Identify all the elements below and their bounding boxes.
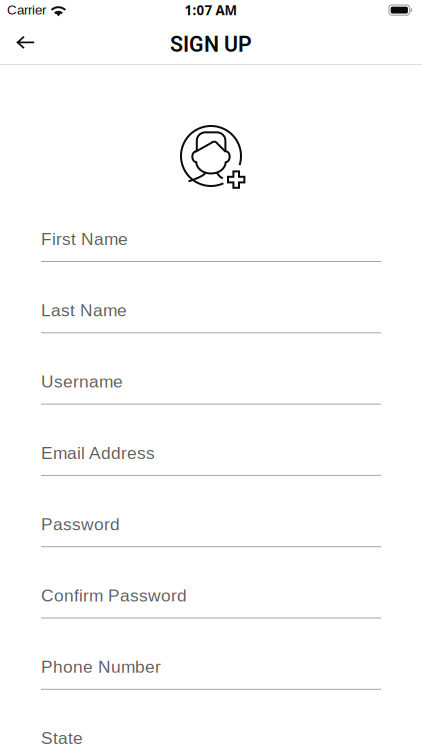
- staticText: Confirm Password: [41, 586, 187, 605]
- button[interactable]: Password: [41, 516, 381, 547]
- button[interactable]: Username: [41, 374, 381, 405]
- button[interactable]: Email Address: [41, 445, 381, 476]
- staticText: Carrier: [7, 3, 46, 17]
- staticText: Last Name: [41, 301, 127, 320]
- staticText: Email Address: [41, 443, 155, 463]
- staticText: Password: [41, 514, 120, 534]
- button[interactable]: Phone Number: [41, 659, 381, 690]
- staticText: State: [41, 728, 83, 748]
- button[interactable]: Confirm Password: [41, 587, 381, 618]
- staticText: First Name: [41, 229, 128, 249]
- staticText: SIGN UP: [170, 32, 252, 57]
- staticText: Phone Number: [41, 657, 161, 676]
- staticText: 1:07 AM: [184, 1, 237, 19]
- button[interactable]: Back: [4, 21, 48, 63]
- button[interactable]: State: [41, 730, 381, 750]
- button[interactable]: Last Name: [41, 302, 381, 333]
- staticText: Username: [41, 372, 123, 391]
- button[interactable]: First Name: [41, 231, 381, 262]
